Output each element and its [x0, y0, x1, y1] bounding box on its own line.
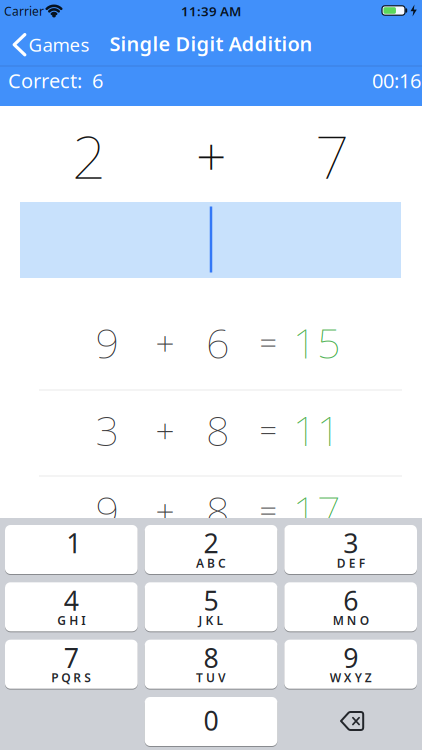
staticText: 2: [203, 525, 218, 561]
staticText: 6: [92, 67, 103, 94]
staticText: =: [259, 490, 276, 531]
staticText: 0: [203, 703, 218, 738]
staticText: 6: [206, 315, 230, 370]
staticText: Single Digit Addition: [109, 30, 312, 57]
staticText: 8: [203, 640, 218, 675]
staticText: +: [155, 408, 174, 452]
staticText: 9: [95, 483, 119, 538]
staticText: D E F: [337, 555, 365, 571]
staticText: =: [259, 322, 276, 363]
staticText: =: [259, 410, 276, 450]
staticText: 7: [64, 640, 79, 675]
staticText: +: [155, 320, 174, 365]
staticText: Correct:: [8, 67, 82, 94]
staticText: 4: [64, 583, 79, 618]
staticText: 9: [95, 315, 119, 370]
staticText: T U V: [196, 670, 226, 686]
staticText: +: [196, 120, 226, 191]
staticText: A B C: [196, 555, 226, 571]
staticText: G H I: [57, 612, 85, 628]
staticText: 8: [206, 403, 230, 457]
staticText: 11:39 AM: [181, 2, 241, 20]
staticText: 15: [293, 315, 341, 370]
staticText: 00:16: [372, 67, 421, 94]
staticText: Carrier: [4, 3, 44, 19]
staticText: 2: [72, 116, 106, 195]
staticText: +: [155, 488, 174, 533]
staticText: J K L: [198, 612, 223, 628]
staticText: 7: [315, 116, 349, 195]
staticText: 17: [293, 483, 341, 538]
staticText: 3: [95, 403, 119, 457]
staticText: 8: [206, 483, 230, 538]
staticText: P Q R S: [51, 670, 91, 686]
staticText: 9: [343, 640, 358, 675]
staticText: M N O: [333, 612, 369, 628]
staticText: 3: [343, 525, 358, 561]
staticText: 6: [343, 583, 358, 618]
staticText: W X Y Z: [330, 670, 372, 686]
staticText: 1: [66, 525, 81, 561]
staticText: 5: [203, 583, 218, 618]
staticText: Games: [28, 32, 89, 57]
staticText: 11: [293, 403, 341, 457]
